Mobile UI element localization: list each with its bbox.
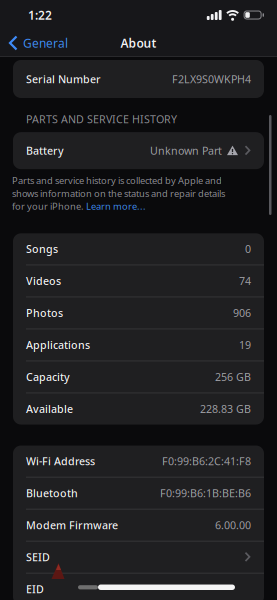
staticText: for your iPhone.	[12, 200, 86, 212]
staticText: Parts and service history is collected b…	[12, 174, 222, 187]
staticText: Videos	[26, 274, 61, 288]
staticText: Unknown Part	[150, 144, 222, 158]
staticText: 74	[239, 274, 251, 288]
staticText: Available	[26, 402, 73, 416]
staticText: 228.83 GB	[200, 402, 251, 416]
button[interactable]: General	[9, 35, 68, 51]
staticText: Battery	[26, 144, 64, 158]
staticText: F0:99:B6:2C:41:F8	[162, 454, 251, 468]
staticText: F2LX9S0WKPH4	[172, 72, 251, 86]
staticText: 256 GB	[215, 370, 251, 384]
button[interactable]: Learn more...	[86, 200, 146, 212]
staticText: 6.00.00	[215, 518, 251, 532]
staticText: Bluetooth	[26, 486, 78, 500]
staticText: SEID	[26, 550, 50, 564]
staticText: About	[120, 35, 156, 51]
staticText: Capacity	[26, 370, 70, 384]
button[interactable]: SEID	[13, 541, 264, 573]
staticText: EID	[26, 582, 44, 596]
staticText: shows information on the status and repa…	[12, 187, 225, 199]
staticText: 906	[233, 306, 251, 320]
staticText: PARTS AND SERVICE HISTORY	[26, 112, 177, 126]
staticText: Songs	[26, 242, 58, 256]
button[interactable]: Battery	[13, 132, 264, 169]
staticText: F0:99:B6:1B:BE:B6	[160, 486, 251, 500]
staticText: Serial Number	[26, 72, 101, 86]
staticText: 19	[239, 338, 251, 352]
staticText: Modem Firmware	[26, 518, 118, 532]
staticText: Applications	[26, 338, 90, 352]
staticText: Learn more...	[86, 200, 146, 212]
staticText: Photos	[26, 306, 63, 320]
staticText: 0	[245, 242, 251, 256]
staticText: General	[23, 35, 68, 51]
staticText: Wi-Fi Address	[26, 454, 95, 468]
staticText: 1:22	[28, 7, 52, 23]
